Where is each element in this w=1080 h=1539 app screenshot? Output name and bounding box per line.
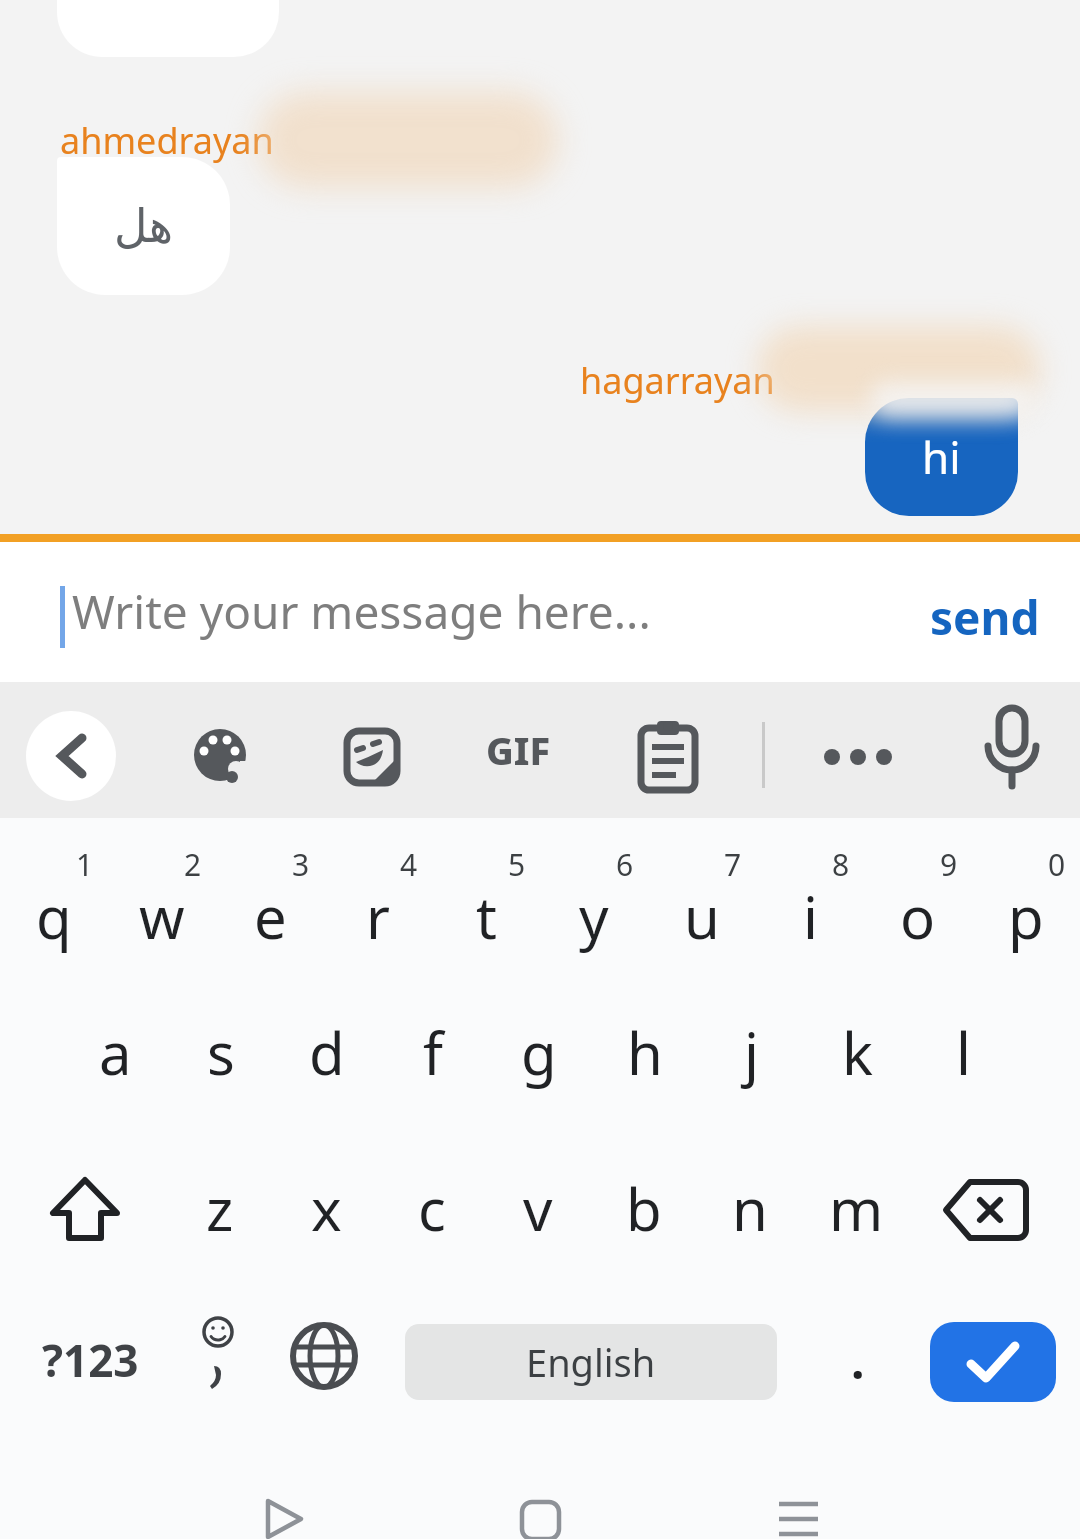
staticText: GIF bbox=[486, 724, 551, 776]
staticText: l bbox=[956, 1013, 971, 1092]
button[interactable] bbox=[812, 726, 904, 782]
button[interactable]: . bbox=[820, 1320, 896, 1400]
staticText: w bbox=[139, 877, 185, 956]
staticText: 4 bbox=[400, 844, 418, 885]
staticText: hagarrayan bbox=[580, 356, 775, 405]
staticText: t bbox=[476, 877, 497, 956]
button[interactable]: r bbox=[324, 840, 432, 980]
staticText: p bbox=[1008, 877, 1044, 956]
staticText: b bbox=[626, 1169, 662, 1248]
button[interactable]: q bbox=[0, 840, 108, 980]
button[interactable] bbox=[638, 720, 700, 784]
button[interactable]: l bbox=[913, 990, 1013, 1114]
button[interactable]: t bbox=[432, 840, 540, 980]
button[interactable] bbox=[246, 1496, 318, 1539]
button[interactable]: u bbox=[648, 840, 756, 980]
button[interactable]: n bbox=[700, 1146, 800, 1270]
button[interactable]: f bbox=[383, 990, 483, 1114]
button[interactable] bbox=[26, 711, 116, 801]
button[interactable] bbox=[930, 1322, 1056, 1402]
staticText: 2 bbox=[184, 844, 202, 885]
button[interactable] bbox=[344, 728, 400, 784]
button[interactable]: g bbox=[489, 990, 589, 1114]
staticText: v bbox=[523, 1169, 553, 1248]
staticText: 5 bbox=[508, 844, 526, 885]
button[interactable] bbox=[286, 1318, 362, 1394]
staticText: 7 bbox=[724, 844, 742, 885]
staticText: n bbox=[732, 1169, 768, 1248]
button[interactable]: ?123 bbox=[20, 1320, 160, 1400]
staticText: i bbox=[803, 877, 818, 956]
staticText: m bbox=[829, 1169, 884, 1248]
button[interactable] bbox=[40, 1172, 130, 1262]
staticText: k bbox=[842, 1013, 873, 1092]
button[interactable]: i bbox=[756, 840, 864, 980]
button[interactable]: a bbox=[65, 990, 165, 1114]
staticText: d bbox=[309, 1013, 345, 1092]
staticText: u bbox=[684, 877, 720, 956]
button[interactable]: w bbox=[108, 840, 216, 980]
button[interactable] bbox=[192, 728, 248, 784]
button[interactable]: k bbox=[807, 990, 907, 1114]
staticText: g bbox=[521, 1013, 557, 1092]
button[interactable]: d bbox=[277, 990, 377, 1114]
button[interactable]: s bbox=[171, 990, 271, 1114]
staticText: 0 bbox=[1048, 844, 1066, 885]
button[interactable]: m bbox=[806, 1146, 906, 1270]
staticText: 1 bbox=[76, 844, 94, 885]
staticText: e bbox=[254, 877, 287, 956]
button[interactable]: j bbox=[701, 990, 801, 1114]
button[interactable]: z bbox=[170, 1146, 270, 1270]
button[interactable]: English bbox=[405, 1324, 777, 1400]
staticText: . bbox=[851, 1328, 865, 1393]
staticText: q bbox=[36, 877, 72, 956]
button[interactable]: c bbox=[382, 1146, 482, 1270]
button[interactable]: x bbox=[276, 1146, 376, 1270]
staticText: 3 bbox=[292, 844, 310, 885]
staticText: هل bbox=[114, 199, 174, 253]
staticText: h bbox=[627, 1013, 663, 1092]
button[interactable]: h bbox=[595, 990, 695, 1114]
staticText: ahmedrayan bbox=[60, 116, 274, 165]
button[interactable] bbox=[180, 1310, 256, 1400]
staticText: 9 bbox=[940, 844, 958, 885]
button[interactable]: y bbox=[540, 840, 648, 980]
button[interactable]: Write your message here... bbox=[0, 542, 1080, 682]
staticText: x bbox=[311, 1169, 342, 1248]
staticText: c bbox=[418, 1169, 446, 1248]
staticText: o bbox=[900, 877, 936, 956]
staticText: r bbox=[366, 877, 390, 956]
staticText: hi bbox=[922, 427, 961, 487]
button[interactable] bbox=[940, 1170, 1040, 1250]
staticText: Write your message here... bbox=[72, 580, 651, 643]
staticText: ?123 bbox=[42, 1330, 139, 1390]
button[interactable] bbox=[762, 1496, 834, 1539]
staticText: English bbox=[526, 1336, 656, 1388]
staticText: send bbox=[930, 586, 1040, 649]
staticText: z bbox=[206, 1169, 234, 1248]
button[interactable]: v bbox=[488, 1146, 588, 1270]
staticText: a bbox=[99, 1013, 132, 1092]
staticText: j bbox=[744, 1013, 759, 1092]
staticText: 6 bbox=[616, 844, 634, 885]
staticText: y bbox=[579, 877, 609, 956]
button[interactable]: GIF bbox=[478, 720, 558, 780]
button[interactable] bbox=[980, 706, 1044, 802]
button[interactable]: e bbox=[216, 840, 324, 980]
button[interactable]: send bbox=[930, 586, 1040, 649]
button[interactable] bbox=[504, 1496, 576, 1539]
staticText: 8 bbox=[832, 844, 850, 885]
button[interactable]: p bbox=[972, 840, 1080, 980]
button[interactable]: b bbox=[594, 1146, 694, 1270]
staticText: s bbox=[207, 1013, 235, 1092]
staticText: f bbox=[423, 1013, 443, 1092]
button[interactable]: o bbox=[864, 840, 972, 980]
